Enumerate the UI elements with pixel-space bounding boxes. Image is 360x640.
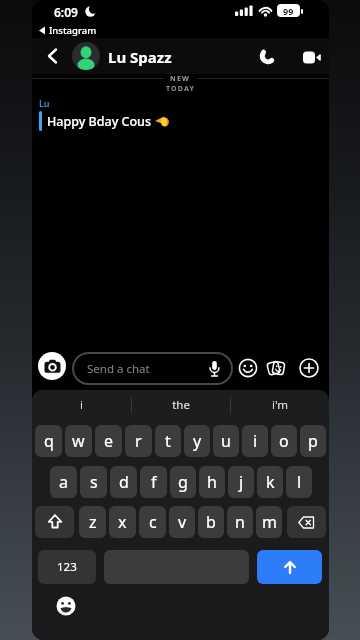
button[interactable]: k [257, 466, 283, 498]
staticText: s [90, 471, 98, 493]
staticText: m [262, 511, 277, 533]
staticText: r [135, 430, 142, 452]
button[interactable] [72, 42, 100, 70]
staticText: i'm [272, 397, 288, 413]
button[interactable] [298, 357, 320, 379]
button[interactable] [38, 352, 66, 380]
button[interactable]: a [50, 466, 77, 498]
staticText: p [308, 430, 318, 452]
button[interactable] [40, 44, 64, 68]
button[interactable]: u [213, 425, 239, 457]
button[interactable]: j [228, 466, 254, 498]
button[interactable] [300, 45, 324, 69]
staticText: g [178, 471, 188, 493]
button[interactable]: c [139, 506, 166, 538]
staticText: u [221, 430, 231, 452]
staticText: Lu Spazz [108, 47, 172, 67]
staticText: x [118, 511, 127, 533]
staticText: j [239, 471, 244, 493]
staticText: Lu [39, 97, 50, 109]
staticText: TODAY [32, 84, 329, 94]
button[interactable]: s [80, 466, 107, 498]
staticText: i [80, 397, 83, 413]
button[interactable]: i'm [230, 396, 329, 414]
button[interactable]: q [35, 425, 62, 457]
staticText: l [297, 471, 302, 493]
button[interactable]: i [242, 425, 268, 457]
button[interactable]: 123 [38, 550, 96, 584]
staticText: t [165, 430, 171, 452]
staticText: f [151, 471, 157, 493]
staticText: h [207, 471, 217, 493]
staticText: w [72, 430, 85, 452]
button[interactable]: o [271, 425, 297, 457]
button[interactable] [265, 357, 287, 379]
button[interactable]: d [110, 466, 137, 498]
button[interactable]: i [32, 396, 131, 414]
button[interactable]: e [95, 425, 122, 457]
staticText: i [253, 430, 258, 452]
staticText: d [119, 471, 129, 493]
staticText: 123 [57, 559, 77, 575]
button[interactable]: w [65, 425, 92, 457]
button[interactable]: r [125, 425, 152, 457]
button[interactable]: b [198, 506, 224, 538]
button[interactable] [35, 506, 74, 538]
button[interactable]: Send a chat [72, 352, 233, 385]
button[interactable]: g [170, 466, 196, 498]
button[interactable]: z [79, 506, 106, 538]
staticText: o [279, 430, 289, 452]
button[interactable]: t [155, 425, 181, 457]
button[interactable] [237, 357, 259, 379]
staticText: q [44, 430, 54, 452]
staticText: Send a chat [87, 361, 208, 377]
staticText: Happy Bday Cous [47, 113, 152, 130]
staticText: Instagram [49, 24, 97, 37]
button[interactable]: p [300, 425, 326, 457]
button[interactable]: n [227, 506, 253, 538]
staticText: e [104, 430, 114, 452]
button[interactable]: l [286, 466, 312, 498]
staticText: z [89, 511, 97, 533]
staticText: the [172, 397, 190, 413]
staticText: k [266, 471, 275, 493]
button[interactable] [287, 506, 326, 538]
button[interactable] [54, 594, 78, 618]
staticText: b [206, 511, 216, 533]
staticText: NEW [164, 74, 197, 82]
staticText: c [149, 511, 157, 533]
staticText: 99 [283, 5, 294, 17]
button[interactable]: v [169, 506, 195, 538]
button[interactable]: h [199, 466, 225, 498]
staticText: n [235, 511, 245, 533]
button[interactable]: x [109, 506, 136, 538]
button[interactable]: m [256, 506, 282, 538]
button[interactable] [257, 550, 322, 584]
button[interactable] [257, 45, 279, 67]
staticText: 6:09 [54, 4, 78, 20]
staticText: v [178, 511, 187, 533]
staticText: y [193, 430, 202, 452]
staticText: a [59, 471, 68, 493]
button[interactable]: y [184, 425, 210, 457]
button[interactable]: the [131, 396, 230, 414]
button[interactable]: f [140, 466, 167, 498]
